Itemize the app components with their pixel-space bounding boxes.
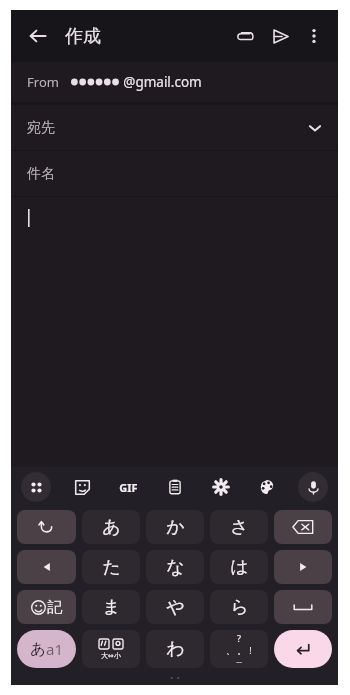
button[interactable]: あ [82, 510, 140, 544]
button[interactable]: わ [146, 630, 204, 668]
staticText: あ [102, 516, 121, 539]
button[interactable]: Attach file [226, 18, 262, 54]
staticText: た [102, 556, 121, 579]
staticText: a1 [46, 639, 63, 659]
button[interactable] [17, 510, 76, 544]
staticText: ! [249, 644, 252, 656]
button[interactable]: Theme [252, 472, 282, 502]
button[interactable]: From [11, 62, 338, 102]
button[interactable]: More options [298, 20, 330, 52]
staticText: あ [30, 640, 46, 659]
staticText: ? [237, 632, 241, 644]
button[interactable] [274, 550, 332, 584]
staticText: 作成 [65, 25, 101, 48]
button[interactable] [274, 510, 332, 544]
button[interactable]: 件名 [11, 151, 338, 196]
button[interactable]: ら [210, 590, 268, 624]
button[interactable]: た [82, 550, 140, 584]
button[interactable]: は [210, 550, 268, 584]
staticText: From [27, 73, 59, 91]
button[interactable]: 記 [17, 590, 76, 624]
button[interactable] [274, 630, 332, 668]
staticText: ま [102, 596, 121, 619]
button[interactable]: Settings [206, 472, 236, 502]
button[interactable]: Apps [21, 472, 51, 502]
staticText: わ [166, 638, 185, 661]
staticText: @gmail.com [123, 73, 202, 91]
button[interactable]: さ [210, 510, 268, 544]
staticText: 宛先 [27, 119, 55, 137]
staticText: 件名 [27, 165, 55, 183]
button[interactable]: Voice input [298, 472, 328, 502]
staticText: 大⇔小 [101, 651, 121, 660]
staticText: か [166, 516, 185, 539]
staticText: ... [236, 656, 242, 666]
button[interactable]: や [146, 590, 204, 624]
staticText: GIF [119, 480, 138, 495]
staticText: 。 [237, 645, 246, 656]
button[interactable]: Clipboard [160, 472, 190, 502]
button[interactable]: 宛先 [11, 105, 338, 150]
button[interactable]: Stickers [67, 472, 97, 502]
button[interactable] [274, 590, 332, 624]
staticText: は [230, 556, 249, 579]
button[interactable]: か [146, 510, 204, 544]
staticText: さ [230, 516, 249, 539]
staticText: や [166, 596, 185, 619]
button[interactable]: ? [210, 630, 268, 668]
button[interactable]: 大⇔小 [82, 630, 140, 668]
button[interactable] [17, 550, 76, 584]
button[interactable]: ま [82, 590, 140, 624]
staticText: 記 [47, 598, 62, 617]
button[interactable]: GIF [113, 472, 143, 502]
staticText: ら [230, 596, 249, 619]
staticText: 、 [226, 645, 235, 656]
button[interactable]: な [146, 550, 204, 584]
button[interactable]: Send [262, 18, 298, 54]
button[interactable] [11, 197, 338, 467]
button[interactable]: Back [19, 17, 57, 55]
staticText: な [166, 556, 185, 579]
button[interactable]: あ [17, 630, 76, 668]
